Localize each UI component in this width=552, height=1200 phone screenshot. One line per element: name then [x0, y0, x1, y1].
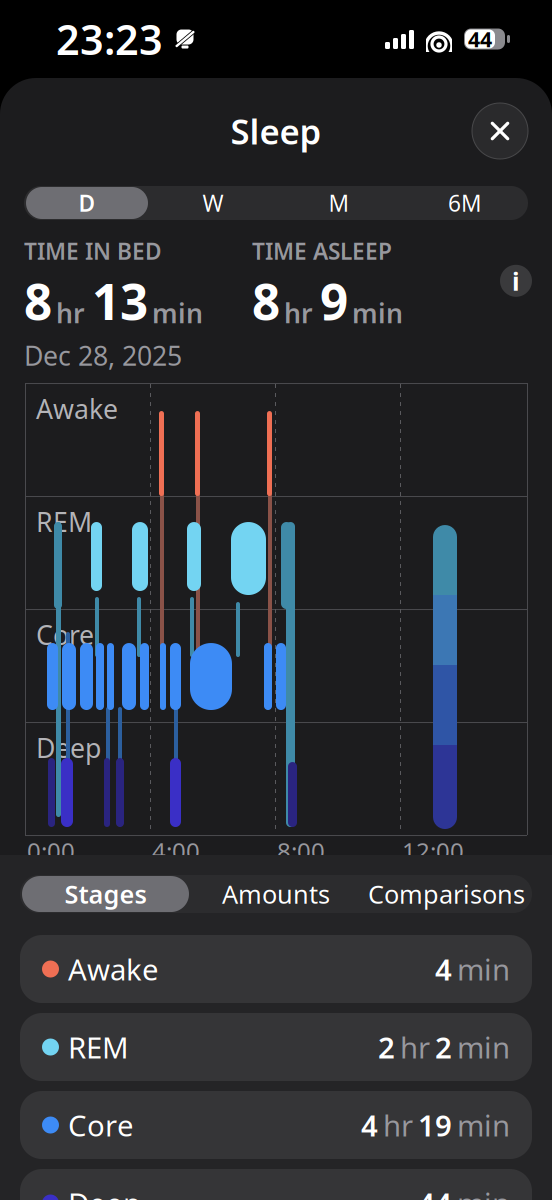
staticText: M — [328, 188, 349, 218]
staticText: 4 — [435, 949, 452, 988]
staticText: Sleep — [230, 108, 321, 154]
staticText: 8 — [252, 268, 280, 334]
staticText: 4:00 — [152, 835, 200, 867]
staticText: REM — [68, 1027, 129, 1066]
staticText: Deep — [68, 1183, 141, 1200]
staticText: 8 — [24, 268, 52, 334]
staticText: Core — [68, 1105, 134, 1144]
staticText: min — [457, 1105, 510, 1144]
button[interactable]: Deep — [20, 1169, 532, 1200]
staticText: Core — [36, 617, 94, 652]
staticText: TIME IN BED — [24, 236, 162, 266]
staticText: 9 — [320, 268, 348, 334]
staticText: min — [457, 1183, 510, 1200]
button[interactable]: Comparisons — [361, 875, 532, 913]
staticText: TIME ASLEEP — [252, 236, 392, 266]
staticText: hr — [383, 1105, 413, 1144]
staticText: 6M — [448, 188, 482, 218]
staticText: Awake — [36, 391, 118, 426]
staticText: min — [457, 949, 510, 988]
staticText: i — [512, 264, 520, 298]
staticText: Comparisons — [368, 877, 525, 911]
staticText: 0:00 — [27, 835, 75, 867]
staticText: 23:23 — [56, 12, 163, 66]
staticText: 2 — [378, 1027, 395, 1066]
button[interactable]: Amounts — [191, 875, 361, 913]
staticText: REM — [36, 504, 92, 539]
button[interactable]: REM — [20, 1013, 532, 1081]
staticText: min — [457, 1027, 510, 1066]
staticText: hr — [400, 1027, 430, 1066]
button[interactable]: Awake — [20, 935, 532, 1003]
button[interactable]: 6M — [402, 186, 528, 220]
button[interactable]: W — [150, 186, 276, 220]
staticText: 44 — [468, 25, 492, 53]
button[interactable]: About sleep data — [500, 264, 532, 298]
staticText: 12:00 — [402, 835, 464, 867]
staticText: Deep — [36, 730, 101, 765]
button[interactable]: M — [276, 186, 402, 220]
staticText: 13 — [92, 268, 148, 334]
staticText: 4 — [361, 1105, 378, 1144]
staticText: min — [152, 295, 203, 331]
staticText: W — [202, 188, 223, 218]
staticText: hr — [56, 295, 85, 331]
staticText: D — [78, 188, 95, 218]
button[interactable]: Core — [20, 1091, 532, 1159]
button[interactable]: D — [24, 186, 150, 220]
staticText: Awake — [68, 949, 159, 988]
staticText: Stages — [64, 877, 146, 911]
staticText: 44 — [418, 1183, 452, 1200]
button[interactable]: Stages — [20, 875, 191, 913]
staticText: 2 — [435, 1027, 452, 1066]
staticText: min — [352, 295, 403, 331]
staticText: 8:00 — [277, 835, 325, 867]
staticText: hr — [284, 295, 313, 331]
staticText: Dec 28, 2025 — [24, 338, 182, 373]
button[interactable]: Close — [472, 103, 528, 159]
staticText: Amounts — [222, 877, 330, 911]
staticText: 19 — [418, 1105, 452, 1144]
